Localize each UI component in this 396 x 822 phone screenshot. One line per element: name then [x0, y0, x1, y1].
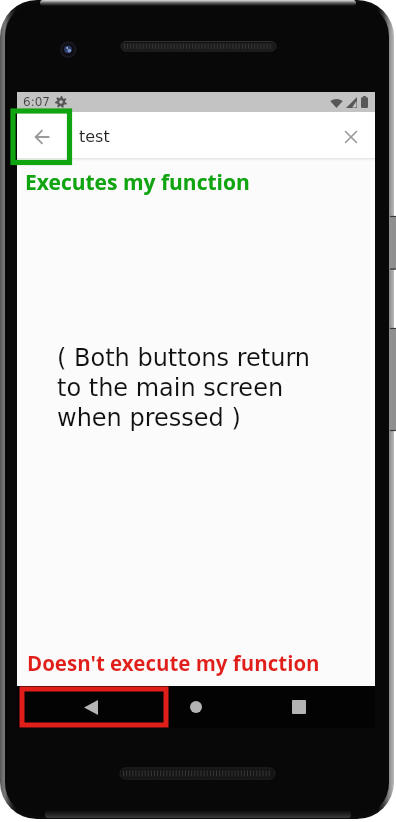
- staticText: Executes my function: [25, 168, 250, 197]
- button[interactable]: Home: [175, 686, 217, 728]
- staticText: ( Both buttons return to the main screen…: [57, 344, 311, 431]
- button[interactable]: Back: [70, 686, 112, 728]
- button[interactable]: Navigate up: [17, 112, 66, 161]
- button[interactable]: Clear search: [328, 114, 374, 160]
- staticText: Doesn't execute my function: [27, 649, 320, 677]
- staticText: test: [79, 127, 110, 146]
- button[interactable]: Recent apps: [278, 686, 320, 728]
- staticText: 6:07: [23, 95, 50, 109]
